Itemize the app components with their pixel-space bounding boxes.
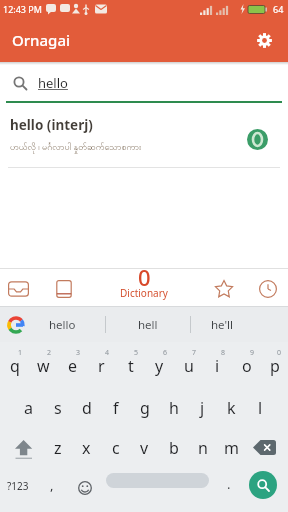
staticText: x <box>82 437 91 459</box>
button[interactable]: x <box>72 430 101 465</box>
staticText: ?123 <box>7 479 29 493</box>
button[interactable]: m <box>217 430 245 465</box>
button[interactable]: hello <box>0 62 288 103</box>
staticText: z <box>54 437 62 459</box>
staticText: m <box>224 437 239 459</box>
staticText: 0 <box>277 348 282 358</box>
button[interactable] <box>251 27 277 53</box>
staticText: y <box>155 355 164 377</box>
staticText: k <box>227 397 236 419</box>
button[interactable]: q <box>0 346 29 386</box>
staticText: u <box>184 355 194 377</box>
staticText: n <box>198 437 208 459</box>
staticText: hello (interj) <box>10 116 93 134</box>
button[interactable]: . <box>217 465 241 512</box>
button[interactable]: e <box>58 346 87 386</box>
button[interactable]: h <box>159 386 188 430</box>
staticText: hello <box>38 74 68 92</box>
button[interactable]: he'll <box>191 307 253 342</box>
staticText: 6 <box>163 348 168 358</box>
staticText: 0 <box>138 262 151 292</box>
button[interactable]: s <box>43 386 72 430</box>
staticText: Ornagai <box>12 30 71 50</box>
button[interactable]: y <box>145 346 174 386</box>
staticText: , <box>50 476 54 494</box>
button[interactable]: p <box>261 346 288 386</box>
staticText: h <box>169 397 179 419</box>
staticText: c <box>112 437 120 459</box>
staticText: s <box>54 397 62 419</box>
button[interactable]: z <box>43 430 72 465</box>
staticText: 5 <box>134 348 139 358</box>
button[interactable]: 0 <box>114 269 174 306</box>
button[interactable]: hell <box>106 307 189 342</box>
button[interactable]: l <box>246 386 275 430</box>
staticText: t <box>128 355 134 377</box>
button[interactable]: n <box>188 430 217 465</box>
button[interactable]: w <box>29 346 58 386</box>
button[interactable]: hello (interj) <box>10 103 268 167</box>
staticText: 9 <box>250 348 255 358</box>
staticText: j <box>200 397 205 419</box>
button[interactable]: ?123 <box>0 465 36 512</box>
button[interactable]: j <box>188 386 217 430</box>
button[interactable] <box>6 276 31 301</box>
button[interactable] <box>211 276 236 301</box>
button[interactable]: t <box>116 346 145 386</box>
staticText: 3 <box>76 348 81 358</box>
button[interactable] <box>4 430 42 465</box>
staticText: w <box>37 355 50 377</box>
button[interactable]: a <box>14 386 43 430</box>
staticText: 7 <box>192 348 197 358</box>
staticText: q <box>10 355 20 377</box>
button[interactable]: r <box>87 346 116 386</box>
staticText: 4 <box>105 348 110 358</box>
staticText: v <box>140 437 149 459</box>
staticText: 8 <box>221 348 226 358</box>
staticText: Dictionary <box>120 286 168 300</box>
staticText: he'll <box>211 317 233 333</box>
button[interactable]: f <box>101 386 130 430</box>
staticText: g <box>140 397 150 419</box>
staticText: i <box>215 355 220 377</box>
button[interactable]: k <box>217 386 246 430</box>
staticText: . <box>227 475 231 493</box>
button[interactable]: o <box>232 346 261 386</box>
button[interactable] <box>106 473 209 488</box>
staticText: o <box>242 355 252 377</box>
button[interactable] <box>6 315 26 335</box>
staticText: e <box>68 355 78 377</box>
button[interactable] <box>249 471 277 499</box>
button[interactable]: , <box>40 465 64 512</box>
button[interactable]: g <box>130 386 159 430</box>
staticText: d <box>82 397 92 419</box>
button[interactable]: v <box>130 430 159 465</box>
button[interactable] <box>72 465 98 512</box>
button[interactable]: d <box>72 386 101 430</box>
staticText: a <box>24 397 33 419</box>
button[interactable] <box>246 430 283 465</box>
staticText: ဟယ်လို ၊ မင်္ဂလာပါ နှုတ်ဆက်သောစကား <box>10 140 142 154</box>
staticText: 2 <box>47 348 52 358</box>
staticText: l <box>258 397 263 419</box>
staticText: 12:43 PM <box>3 3 42 15</box>
staticText: p <box>270 355 280 377</box>
button[interactable] <box>247 129 268 150</box>
staticText: b <box>169 437 179 459</box>
staticText: r <box>98 355 105 377</box>
button[interactable]: u <box>174 346 203 386</box>
staticText: hello <box>49 317 76 333</box>
button[interactable] <box>51 276 76 301</box>
staticText: f <box>113 397 119 419</box>
button[interactable]: hello <box>30 307 95 342</box>
button[interactable]: c <box>101 430 130 465</box>
staticText: 64 <box>273 3 284 15</box>
button[interactable]: i <box>203 346 232 386</box>
staticText: hell <box>138 317 158 333</box>
button[interactable]: b <box>159 430 188 465</box>
button[interactable] <box>255 276 280 301</box>
staticText: 1 <box>18 348 23 358</box>
